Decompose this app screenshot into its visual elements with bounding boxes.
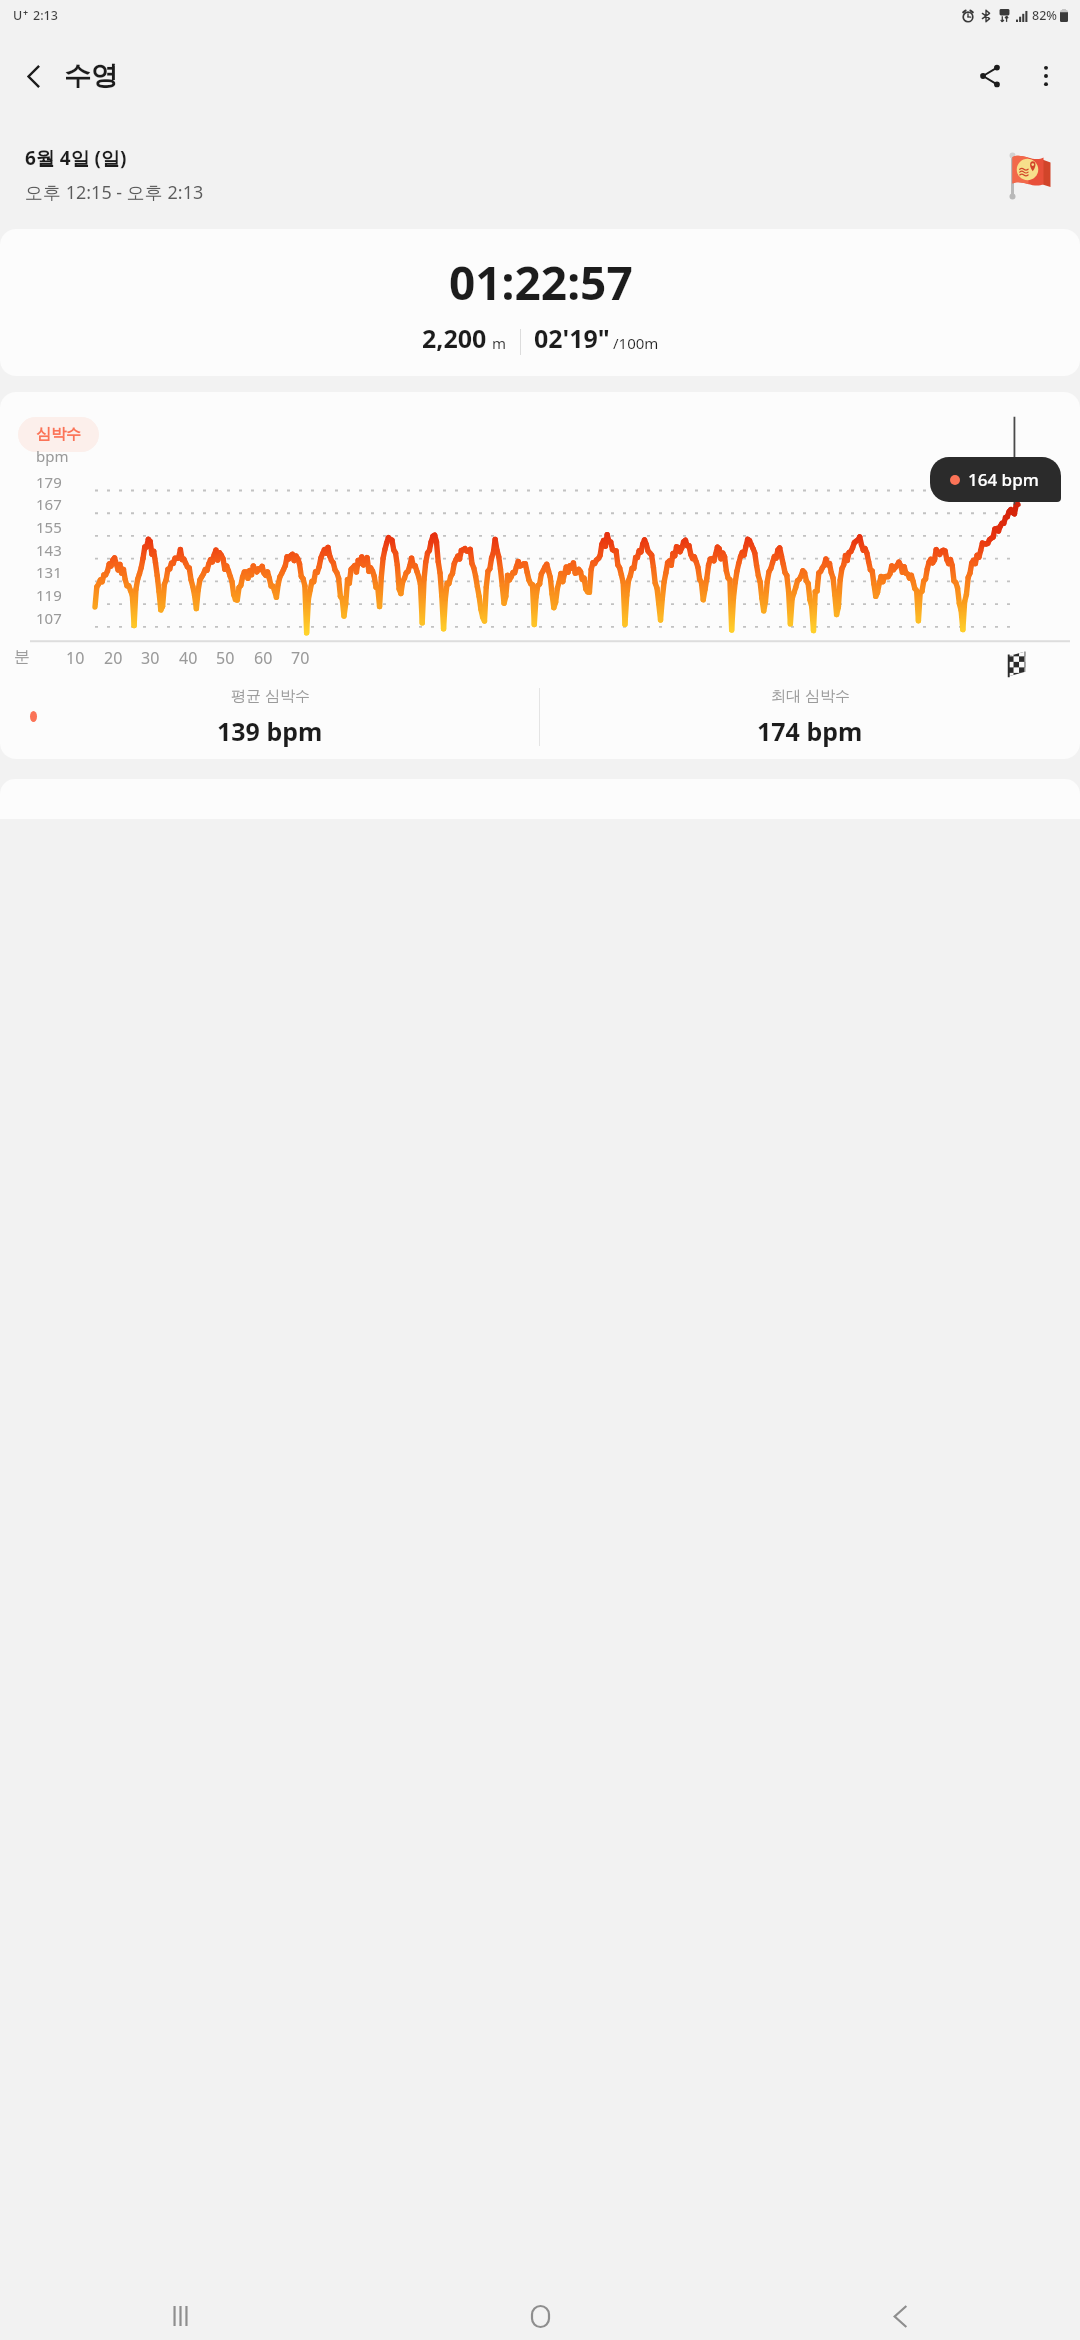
staticText: +: [23, 6, 29, 18]
staticText: 2,200: [422, 321, 487, 355]
staticText: 155: [36, 517, 62, 537]
staticText: 60: [254, 647, 273, 669]
staticText: 분: [14, 647, 30, 667]
staticText: 139 bpm: [217, 714, 323, 748]
button[interactable]: 01:22:57: [0, 229, 1080, 376]
staticText: 167: [36, 494, 62, 514]
button[interactable]: Share: [962, 48, 1018, 104]
staticText: 40: [179, 647, 198, 669]
staticText: 20: [104, 647, 123, 669]
staticText: 50: [216, 647, 235, 669]
staticText: 최대 심박수: [771, 685, 850, 705]
button[interactable]: Back: [6, 48, 62, 104]
staticText: 119: [36, 585, 62, 605]
button[interactable]: Back: [720, 2292, 1080, 2340]
staticText: 2:13: [33, 7, 58, 24]
staticText: 6월 4일 (일): [25, 145, 127, 171]
button[interactable]: 164 bpm: [930, 457, 1061, 502]
staticText: 심박수: [36, 425, 81, 444]
staticText: 107: [36, 608, 62, 628]
staticText: U: [13, 7, 23, 24]
staticText: 174 bpm: [757, 714, 863, 748]
staticText: 164 bpm: [968, 468, 1039, 491]
staticText: 10: [66, 647, 85, 669]
staticText: 70: [291, 647, 310, 669]
button[interactable]: 심박수: [18, 417, 99, 452]
staticText: 평균 심박수: [231, 685, 310, 705]
button[interactable]: Home: [360, 2292, 720, 2340]
staticText: 82%: [1032, 7, 1057, 24]
staticText: 01:22:57: [449, 251, 633, 314]
button[interactable]: Recent apps: [0, 2292, 360, 2340]
staticText: 02'19": [534, 321, 610, 355]
staticText: 오후 12:15 - 오후 2:13: [25, 180, 204, 205]
staticText: 179: [36, 472, 62, 492]
button[interactable]: More options: [1018, 48, 1074, 104]
staticText: 131: [36, 562, 62, 582]
staticText: 수영: [64, 59, 118, 93]
staticText: 30: [141, 647, 160, 669]
staticText: bpm: [36, 446, 69, 466]
staticText: m: [492, 333, 507, 353]
staticText: 143: [36, 540, 62, 560]
staticText: /100m: [613, 333, 659, 353]
